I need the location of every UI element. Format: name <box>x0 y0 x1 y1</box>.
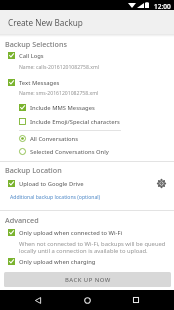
staticText: Call Logs <box>19 52 44 60</box>
button[interactable]: Selected Conversations Only <box>0 146 174 157</box>
button[interactable]: Recent apps <box>126 290 146 310</box>
staticText: Include MMS Messages <box>30 104 95 112</box>
staticText: Include Emoji/Special characters <box>30 118 120 126</box>
staticText: Text Messages <box>19 79 60 87</box>
staticText: 12:00 <box>154 2 171 11</box>
button[interactable]: Include Emoji/Special characters <box>0 116 174 127</box>
button[interactable]: Call Logs <box>0 50 174 61</box>
button[interactable]: Backup location settings <box>153 175 169 191</box>
button[interactable]: Back <box>28 290 48 310</box>
staticText: All Conversations <box>30 135 79 143</box>
staticText: Create New Backup <box>8 17 83 28</box>
button[interactable]: Home <box>77 290 97 310</box>
staticText: Upload to Google Drive <box>19 180 84 188</box>
staticText: Name: sms-20161201082758.xml <box>19 90 99 97</box>
button[interactable]: Additional backup locations (optional) <box>0 192 174 201</box>
staticText: Backup Location <box>5 165 62 175</box>
staticText: BACK UP NOW <box>65 276 111 284</box>
staticText: Additional backup locations (optional) <box>10 194 101 201</box>
staticText: Selected Conversations Only <box>30 148 109 156</box>
button[interactable]: All Conversations <box>0 133 174 144</box>
button[interactable]: Only upload when connected to Wi-Fi <box>0 227 174 238</box>
button[interactable]: Upload to Google Drive <box>0 178 174 189</box>
staticText: Only upload when charging <box>19 258 96 266</box>
staticText: Name: calls-20161201082758.xml <box>19 64 99 71</box>
staticText: Advanced <box>5 215 39 225</box>
button[interactable]: BACK UP NOW <box>4 272 171 287</box>
staticText: When not connected to Wi-Fi, backups wil… <box>19 240 166 255</box>
staticText: Backup Selections <box>5 39 67 49</box>
button[interactable]: Include MMS Messages <box>0 102 174 113</box>
button[interactable]: Only upload when charging <box>0 256 174 267</box>
staticText: Only upload when connected to Wi-Fi <box>19 229 123 237</box>
button[interactable]: Text Messages <box>0 77 174 88</box>
